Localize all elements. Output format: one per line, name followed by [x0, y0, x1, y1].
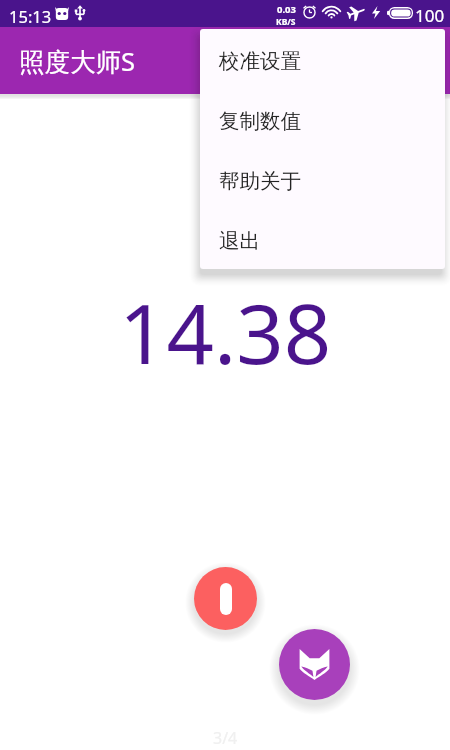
staticText: 帮助关于 [219, 168, 301, 194]
button[interactable]: 校准设置 [200, 29, 445, 89]
button[interactable]: 帮助关于 [200, 149, 445, 209]
staticText: 15:13 [9, 5, 52, 27]
staticText: 0.03 [277, 3, 296, 16]
staticText: KB/S [276, 16, 296, 28]
button[interactable]: 复制数值 [200, 89, 445, 149]
staticText: 3/4 [213, 727, 238, 749]
button[interactable]: App logo [279, 629, 350, 700]
staticText: 退出 [219, 228, 260, 254]
button[interactable]: 退出 [200, 209, 445, 269]
button[interactable]: Pause measurement [194, 567, 257, 630]
staticText: 复制数值 [219, 108, 301, 134]
staticText: 校准设置 [219, 48, 301, 74]
staticText: 14.38 [119, 275, 332, 388]
staticText: 100 [415, 4, 445, 27]
staticText: 照度大师S [19, 44, 135, 79]
